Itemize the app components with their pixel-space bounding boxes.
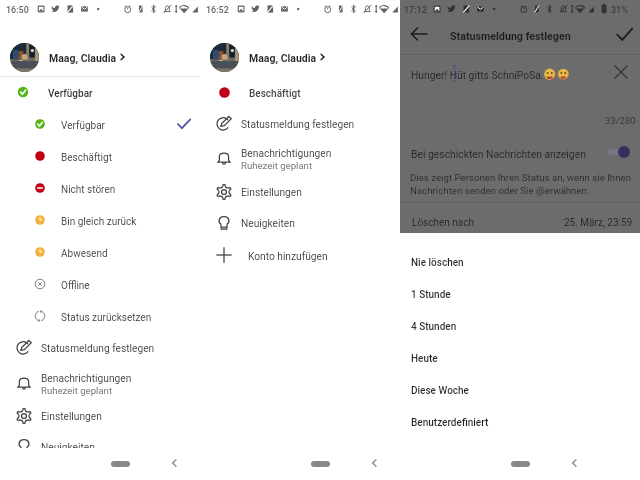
button[interactable] bbox=[200, 76, 440, 107]
staticText: 1 Stunde bbox=[411, 289, 451, 301]
button[interactable] bbox=[400, 246, 640, 278]
staticText: Dies zeigt Personen Ihren Status an, wen… bbox=[410, 172, 632, 183]
staticText: Statusmeldung festlegen bbox=[241, 119, 355, 131]
staticText: Nicht stören bbox=[61, 184, 116, 196]
staticText: Nachrichten senden oder Sie @erwähnen. bbox=[410, 185, 590, 196]
staticText: Konto hinzufügen bbox=[248, 251, 328, 263]
staticText: Abwesend bbox=[61, 248, 108, 260]
button[interactable] bbox=[400, 61, 640, 85]
staticText: Statusmeldung festlegen bbox=[450, 30, 571, 43]
staticText: Nie löschen bbox=[411, 257, 464, 269]
button[interactable] bbox=[0, 37, 240, 77]
staticText: Diese Woche bbox=[411, 385, 469, 397]
staticText: Hunger! Hüt gitts SchniPoSa. bbox=[411, 69, 544, 81]
button[interactable]: Back bbox=[567, 456, 581, 470]
staticText: Verfügbar bbox=[48, 88, 93, 100]
button[interactable]: Home bbox=[311, 461, 330, 467]
staticText: 16:50 bbox=[6, 5, 29, 16]
staticText: Einstellungen bbox=[41, 411, 102, 423]
button[interactable] bbox=[0, 236, 240, 268]
button[interactable]: Clear status bbox=[613, 64, 629, 80]
staticText: Heute bbox=[411, 353, 438, 365]
button[interactable] bbox=[0, 77, 240, 108]
staticText: Einstellungen bbox=[241, 187, 302, 199]
button[interactable] bbox=[400, 374, 640, 406]
button[interactable] bbox=[200, 37, 440, 77]
staticText: Ruhezeit geplant bbox=[241, 160, 313, 171]
button[interactable] bbox=[400, 406, 640, 438]
staticText: 33/280 bbox=[605, 115, 636, 126]
staticText: Benachrichtigungen bbox=[241, 148, 332, 160]
staticText: Maag, Claudia bbox=[49, 52, 117, 64]
button[interactable] bbox=[400, 278, 640, 310]
button[interactable] bbox=[0, 204, 240, 236]
button[interactable] bbox=[200, 240, 440, 270]
button[interactable] bbox=[200, 137, 440, 179]
staticText: 31% bbox=[611, 5, 628, 16]
button[interactable] bbox=[0, 172, 240, 204]
staticText: 25. März, 23:59 bbox=[564, 217, 633, 229]
staticText: Maag, Claudia bbox=[249, 52, 317, 64]
button[interactable] bbox=[0, 401, 240, 431]
button[interactable] bbox=[200, 108, 440, 138]
button[interactable] bbox=[400, 310, 640, 342]
button[interactable] bbox=[0, 300, 240, 332]
button[interactable] bbox=[200, 177, 440, 207]
staticText: Benutzerdefiniert bbox=[411, 417, 489, 429]
button[interactable] bbox=[0, 268, 240, 300]
button[interactable] bbox=[400, 342, 640, 374]
staticText: Bin gleich zurück bbox=[61, 216, 137, 228]
button[interactable] bbox=[0, 140, 240, 172]
staticText: Bei geschickten Nachrichten anzeigen bbox=[411, 148, 586, 160]
button[interactable] bbox=[0, 362, 240, 404]
button[interactable] bbox=[400, 141, 640, 164]
button[interactable]: Back bbox=[410, 24, 430, 44]
staticText: Beschäftigt bbox=[61, 152, 112, 164]
button[interactable] bbox=[200, 208, 440, 238]
staticText: Status zurücksetzen bbox=[61, 312, 152, 324]
staticText: Ruhezeit geplant bbox=[41, 385, 113, 396]
button[interactable] bbox=[0, 431, 240, 461]
staticText: Neuigkeiten bbox=[241, 218, 295, 230]
staticText: Offline bbox=[61, 280, 90, 292]
staticText: Verfügbar bbox=[61, 120, 105, 132]
button[interactable]: Save bbox=[616, 26, 633, 43]
staticText: 16:52 bbox=[206, 5, 229, 16]
button[interactable]: Home bbox=[111, 461, 130, 467]
staticText: Beschäftigt bbox=[249, 88, 301, 100]
button[interactable]: Back bbox=[167, 456, 181, 470]
button[interactable] bbox=[400, 206, 640, 233]
staticText: 17:12 bbox=[404, 5, 427, 16]
button[interactable]: Home bbox=[511, 461, 530, 467]
staticText: Benachrichtigungen bbox=[41, 373, 132, 385]
staticText: Neuigkeiten bbox=[41, 442, 95, 454]
staticText: Statusmeldung festlegen bbox=[41, 343, 155, 355]
button[interactable] bbox=[0, 108, 240, 140]
staticText: 4 Stunden bbox=[411, 321, 457, 333]
button[interactable] bbox=[0, 332, 240, 362]
staticText: Löschen nach bbox=[412, 217, 475, 229]
button[interactable]: Back bbox=[367, 456, 381, 470]
